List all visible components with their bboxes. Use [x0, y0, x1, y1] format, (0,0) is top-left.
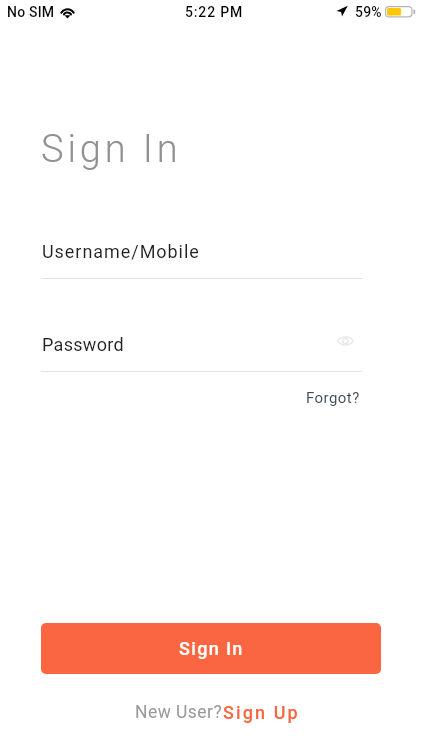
- button[interactable]: New User?: [135, 702, 223, 723]
- staticText: 5:22 PM: [185, 4, 244, 20]
- button[interactable]: Show password: [331, 327, 359, 355]
- staticText: Sign In: [179, 638, 244, 659]
- button[interactable]: Sign Up: [223, 702, 300, 723]
- staticText: Username/Mobile: [42, 241, 200, 262]
- staticText: Sign In: [41, 127, 182, 172]
- button[interactable]: Forgot?: [306, 385, 366, 409]
- staticText: No SIM: [7, 4, 55, 20]
- staticText: Forgot?: [306, 389, 360, 407]
- staticText: 59%: [355, 4, 382, 20]
- button[interactable]: Sign In: [41, 623, 381, 674]
- staticText: Password: [42, 334, 124, 355]
- button[interactable]: Password: [41, 334, 362, 372]
- button[interactable]: Username/Mobile: [41, 241, 362, 279]
